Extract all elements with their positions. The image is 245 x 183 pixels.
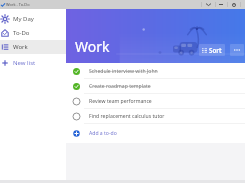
- button[interactable]: Sort: [199, 44, 225, 56]
- staticText: Review team performance: [89, 98, 152, 105]
- button[interactable]: Minimize: [215, 0, 227, 9]
- button[interactable]: Work: [0, 40, 66, 54]
- button[interactable]: More options: [230, 44, 244, 56]
- staticText: Create roadmap template: [89, 83, 151, 90]
- staticText: Find replacement calculus tutor: [89, 113, 165, 120]
- staticText: Sort: [209, 46, 222, 54]
- staticText: New list: [13, 59, 36, 67]
- button[interactable]: Add a to-do: [66, 127, 245, 140]
- button[interactable]: Create roadmap template: [66, 79, 245, 94]
- button[interactable]: My Day: [0, 12, 66, 26]
- button[interactable]: More: [201, 0, 215, 9]
- button[interactable]: Find replacement calculus tutor: [66, 109, 245, 124]
- button[interactable]: Restore: [227, 0, 240, 9]
- staticText: Work - To-Do: [6, 2, 30, 7]
- button[interactable]: Review team performance: [66, 94, 245, 109]
- staticText: Work: [13, 43, 28, 51]
- staticText: My Day: [13, 15, 34, 23]
- button[interactable]: To-Do: [0, 26, 66, 40]
- staticText: Work: [75, 37, 110, 56]
- button[interactable]: Schedule interview with John: [66, 64, 245, 79]
- staticText: To-Do: [13, 29, 30, 37]
- staticText: Add a to-do: [89, 130, 117, 137]
- button[interactable]: New list: [0, 56, 66, 70]
- staticText: Schedule interview with John: [89, 68, 158, 75]
